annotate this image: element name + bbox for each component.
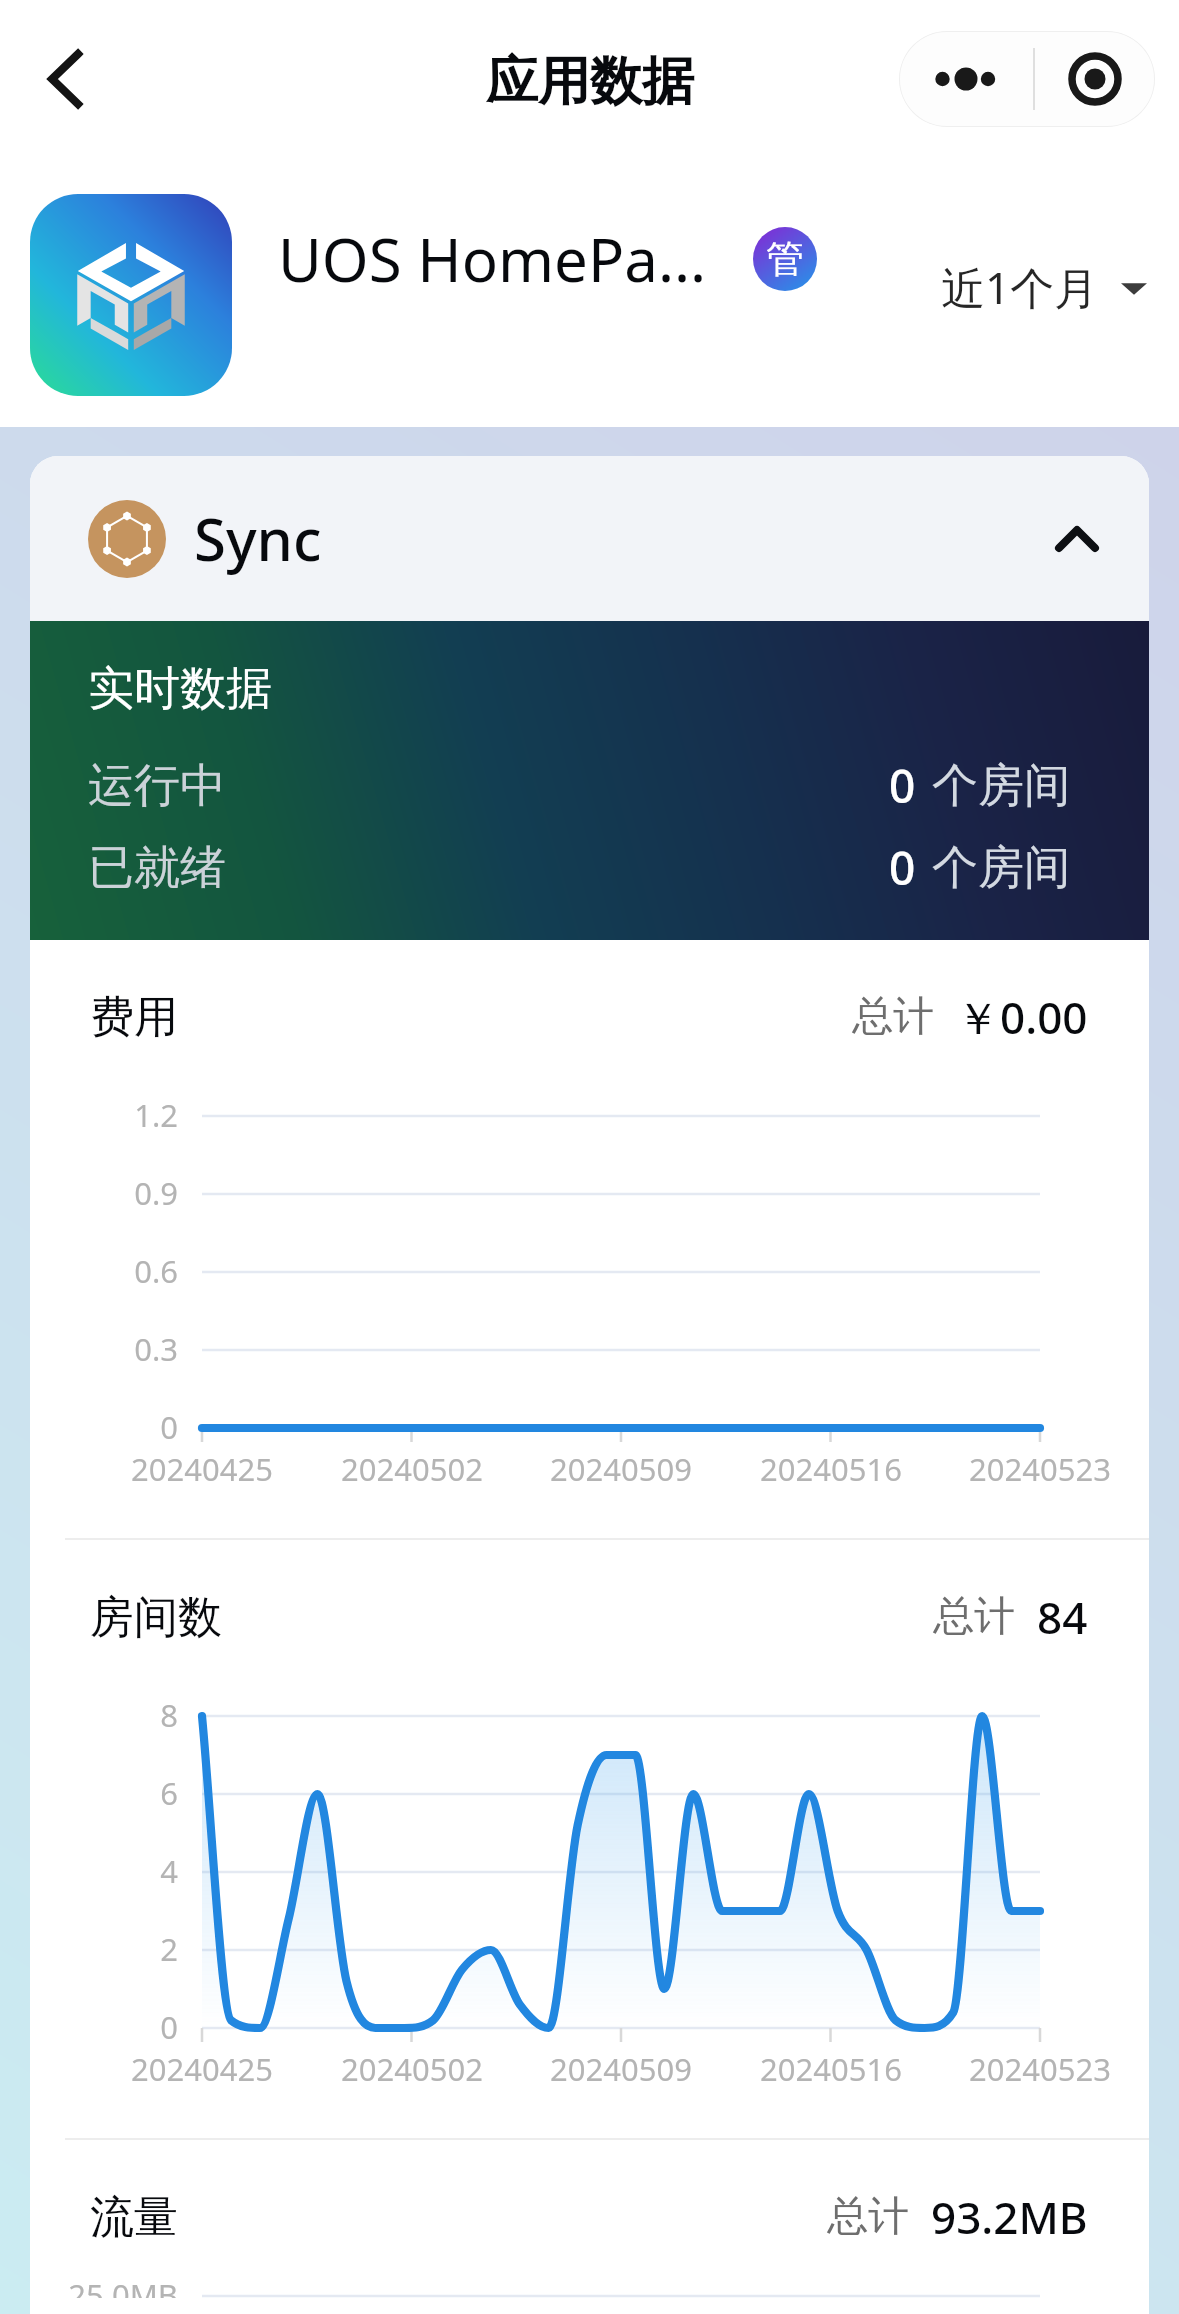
staticText: 20240516 [681, 1448, 981, 1490]
staticText: 0 [889, 836, 916, 899]
staticText: 2 [30, 1928, 178, 1970]
button[interactable]: 房间数 [30, 1587, 1149, 1647]
staticText: 4 [30, 1850, 178, 1892]
staticText: 总计 [933, 1591, 1015, 1643]
staticText: 0.6 [30, 1250, 178, 1292]
staticText: Sync [194, 499, 322, 578]
staticText: 实时数据 [88, 660, 272, 718]
staticText: 0 [30, 2006, 178, 2048]
staticText: 0.3 [30, 1328, 178, 1370]
staticText: 8 [30, 1694, 178, 1736]
staticText: 20240425 [52, 1448, 352, 1490]
staticText: 1.2 [30, 1094, 178, 1136]
staticText: 总计 [852, 991, 934, 1043]
staticText: ￥0.00 [956, 987, 1088, 1047]
staticText: 流量 [90, 2190, 178, 2245]
staticText: 费用 [90, 990, 178, 1045]
button[interactable]: 流量 [30, 2187, 1149, 2247]
staticText: 应用数据 [486, 49, 694, 115]
staticText: 近1个月 [941, 257, 1099, 317]
staticText: 0.9 [30, 1172, 178, 1214]
staticText: 20240502 [262, 2048, 562, 2090]
staticText: 运行中 [88, 757, 226, 815]
staticText: 20240509 [471, 2048, 771, 2090]
staticText: 20240509 [471, 1448, 771, 1490]
button[interactable]: 费用 [30, 987, 1149, 1047]
staticText: 已就绪 [88, 839, 226, 897]
staticText: 20240516 [681, 2048, 981, 2090]
staticText: 个房间 [932, 839, 1070, 897]
staticText: 20240502 [262, 1448, 562, 1490]
staticText: 管 [766, 235, 804, 283]
staticText: 20240425 [52, 2048, 352, 2090]
staticText: 0 [889, 754, 916, 817]
staticText: 0 [30, 1406, 178, 1448]
staticText: 25.0MB [30, 2274, 178, 2298]
staticText: 93.2MB [931, 2187, 1088, 2247]
staticText: 20240523 [890, 1448, 1149, 1490]
button[interactable]: 近1个月 [931, 243, 1157, 331]
staticText: 6 [30, 1772, 178, 1814]
button[interactable]: Sync [30, 456, 1149, 621]
staticText: 个房间 [932, 757, 1070, 815]
staticText: 房间数 [90, 1590, 222, 1645]
staticText: 84 [1037, 1587, 1088, 1647]
button[interactable]: Back [17, 31, 113, 127]
staticText: 20240523 [890, 2048, 1149, 2090]
button[interactable]: App icon [30, 194, 232, 396]
staticText: 总计 [827, 2191, 909, 2243]
button[interactable]: More options [899, 31, 1033, 127]
staticText: UOS HomePa... [278, 218, 707, 300]
button[interactable]: Close mini program [1035, 31, 1155, 127]
